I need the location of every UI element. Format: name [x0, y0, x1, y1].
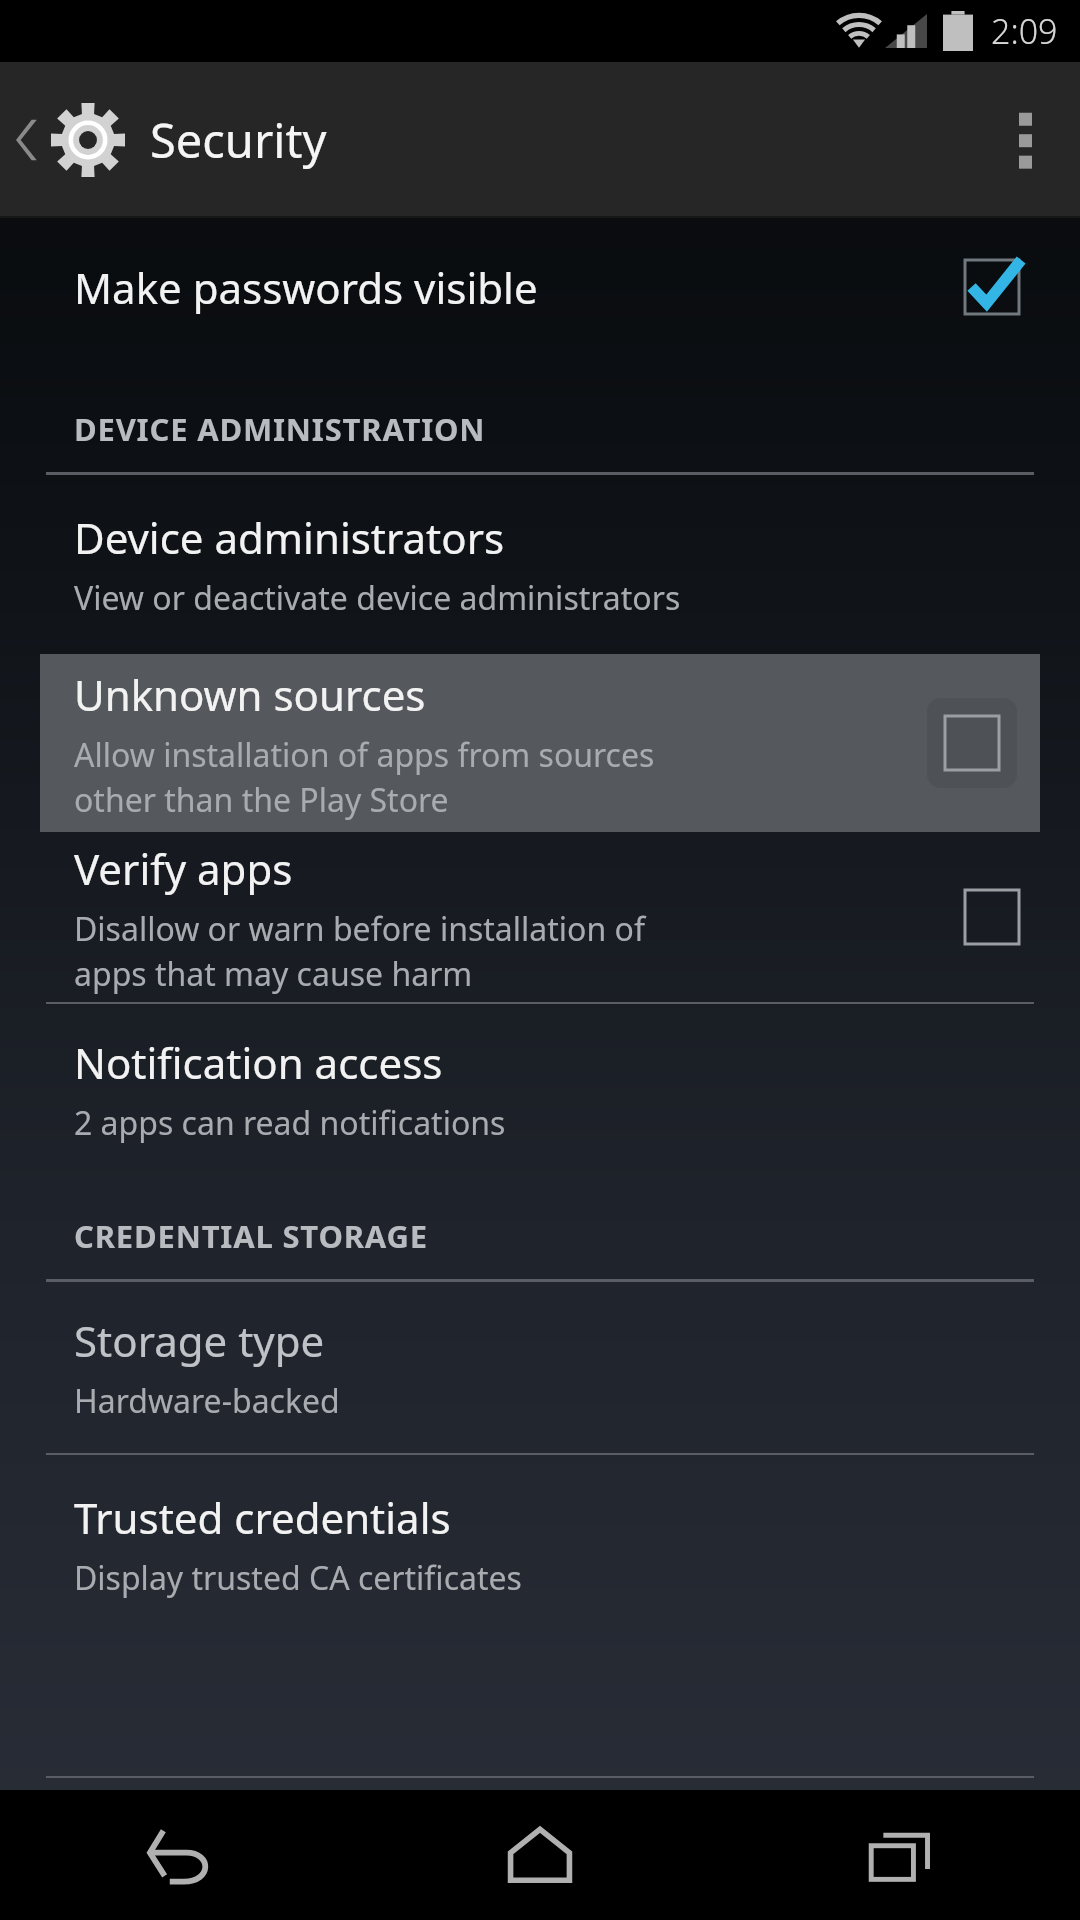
staticText: Make passwords visible [74, 259, 538, 316]
staticText: Notification access [74, 1034, 443, 1091]
staticText: Verify apps [74, 840, 293, 897]
staticText: Trusted credentials [74, 1489, 451, 1546]
button[interactable]: Make passwords visible [0, 218, 1080, 356]
staticText: 2 apps can read notifications [74, 1101, 506, 1145]
staticText: CREDENTIAL STORAGE [74, 1215, 428, 1257]
button[interactable]: Home [360, 1790, 720, 1920]
staticText: Disallow or warn before installation of … [74, 907, 645, 995]
staticText: Hardware-backed [74, 1379, 340, 1423]
staticText: View or deactivate device administrators [74, 576, 681, 620]
staticText: Unknown sources [74, 666, 426, 723]
staticText: Device administrators [74, 509, 505, 566]
button[interactable]: Notification access [0, 1004, 1080, 1175]
button[interactable]: More options [970, 62, 1080, 218]
button[interactable]: Device administrators [0, 475, 1080, 654]
staticText: Security [150, 108, 327, 172]
button[interactable]: Storage type [0, 1282, 1080, 1453]
staticText: Display trusted CA certificates [74, 1556, 522, 1600]
other: Navigate up [12, 110, 46, 170]
staticText: Storage type [74, 1312, 325, 1369]
button[interactable]: Recent apps [720, 1790, 1080, 1920]
staticText: Allow installation of apps from sources … [74, 733, 655, 821]
button[interactable]: Verify apps [0, 832, 1080, 1002]
button[interactable]: Back [0, 1790, 360, 1920]
staticText: 2:09 [991, 8, 1058, 54]
button[interactable]: Navigate up [0, 62, 345, 218]
button[interactable]: Trusted credentials [0, 1455, 1080, 1634]
staticText: DEVICE ADMINISTRATION [74, 408, 486, 450]
button[interactable]: Unknown sources [40, 654, 1040, 832]
